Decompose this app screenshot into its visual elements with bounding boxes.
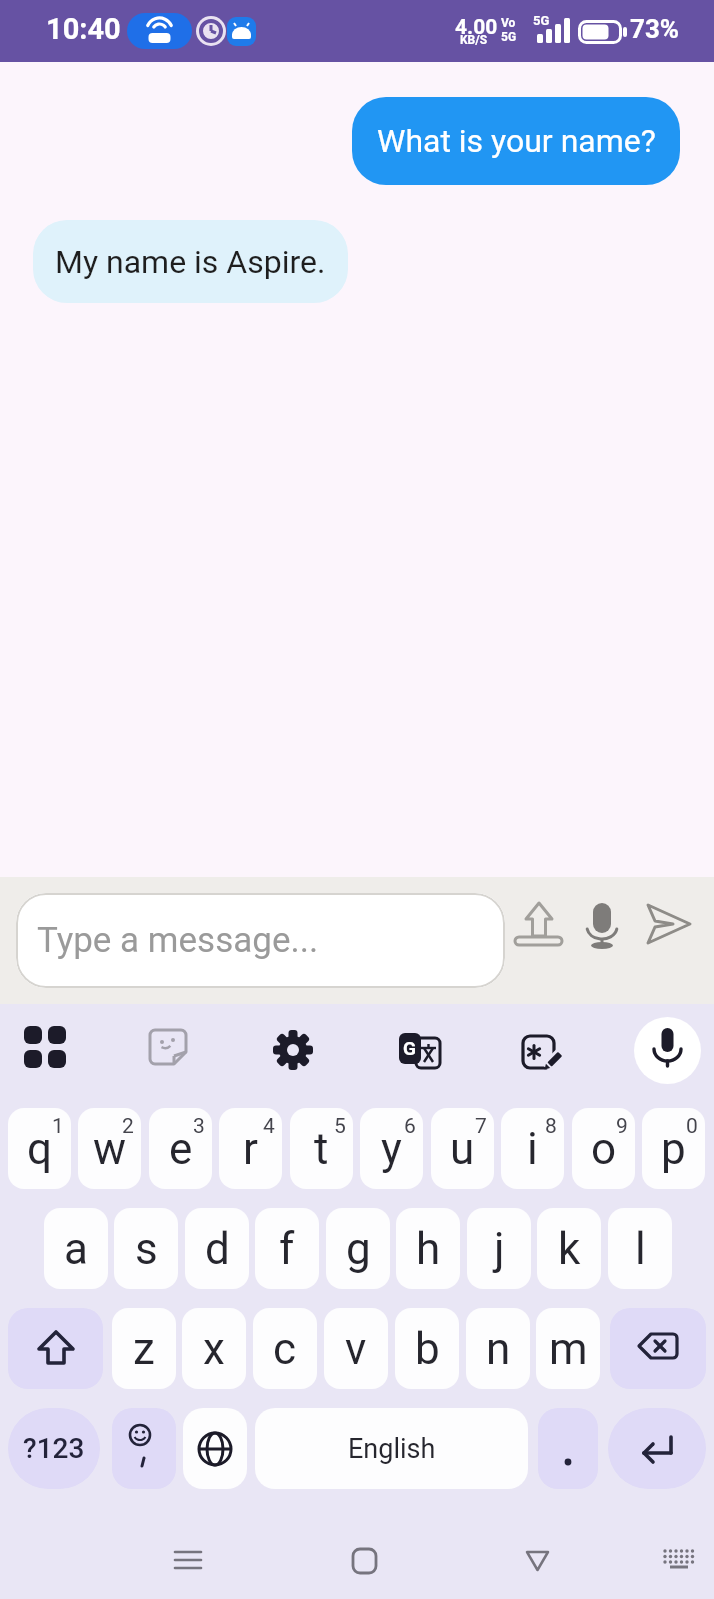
- button[interactable]: [642, 901, 694, 949]
- button[interactable]: x: [182, 1308, 246, 1389]
- button[interactable]: [148, 1028, 192, 1072]
- button[interactable]: o: [572, 1108, 635, 1189]
- button[interactable]: l: [608, 1208, 672, 1289]
- button[interactable]: d: [185, 1208, 249, 1289]
- button[interactable]: b: [395, 1308, 459, 1389]
- button[interactable]: [658, 1540, 700, 1582]
- staticText: q: [27, 1123, 53, 1175]
- button[interactable]: q: [8, 1108, 71, 1189]
- staticText: 4: [263, 1114, 275, 1139]
- button[interactable]: z: [112, 1308, 176, 1389]
- staticText: a: [64, 1223, 88, 1275]
- button[interactable]: [608, 1408, 706, 1489]
- button[interactable]: [127, 13, 192, 49]
- staticText: Type a message...: [37, 920, 319, 961]
- button[interactable]: [517, 1540, 557, 1580]
- staticText: b: [415, 1323, 440, 1375]
- button[interactable]: ?123: [8, 1408, 100, 1489]
- staticText: e: [169, 1123, 193, 1175]
- button[interactable]: a: [44, 1208, 108, 1289]
- button[interactable]: t: [290, 1108, 353, 1189]
- button[interactable]: r: [219, 1108, 282, 1189]
- staticText: o: [591, 1123, 617, 1175]
- button[interactable]: p: [642, 1108, 705, 1189]
- button[interactable]: j: [467, 1208, 531, 1289]
- staticText: l: [635, 1223, 646, 1275]
- staticText: n: [486, 1323, 511, 1375]
- button[interactable]: What is your name?: [352, 97, 680, 185]
- staticText: u: [450, 1123, 475, 1175]
- staticText: 0: [686, 1114, 698, 1139]
- button[interactable]: c: [253, 1308, 317, 1389]
- button[interactable]: [112, 1408, 176, 1489]
- button[interactable]: [634, 1017, 701, 1084]
- staticText: 2: [122, 1114, 134, 1139]
- staticText: t: [314, 1123, 329, 1175]
- staticText: Vo: [501, 16, 516, 30]
- button[interactable]: h: [396, 1208, 460, 1289]
- staticText: 4.00: [455, 15, 498, 40]
- staticText: English: [348, 1433, 436, 1465]
- staticText: f: [279, 1223, 295, 1275]
- button[interactable]: y: [360, 1108, 423, 1189]
- staticText: 73%: [630, 14, 680, 44]
- button[interactable]: [168, 1540, 208, 1580]
- button[interactable]: [8, 1308, 103, 1389]
- button[interactable]: w: [78, 1108, 141, 1189]
- staticText: 9: [616, 1114, 628, 1139]
- staticText: w: [93, 1123, 127, 1175]
- button[interactable]: [513, 899, 565, 949]
- button[interactable]: [610, 1308, 706, 1389]
- staticText: 8: [545, 1114, 557, 1139]
- staticText: 7: [475, 1114, 487, 1139]
- button[interactable]: My name is Aspire.: [33, 220, 348, 303]
- button[interactable]: v: [324, 1308, 388, 1389]
- staticText: My name is Aspire.: [55, 243, 326, 281]
- staticText: h: [416, 1223, 441, 1275]
- staticText: x: [203, 1323, 225, 1375]
- staticText: 10:40: [46, 12, 121, 46]
- staticText: 3: [193, 1114, 205, 1139]
- button[interactable]: f: [255, 1208, 319, 1289]
- button[interactable]: e: [149, 1108, 212, 1189]
- button[interactable]: English: [255, 1408, 528, 1489]
- button[interactable]: [183, 1408, 247, 1489]
- button[interactable]: s: [114, 1208, 178, 1289]
- staticText: k: [558, 1223, 581, 1275]
- staticText: g: [346, 1223, 371, 1275]
- button[interactable]: g: [326, 1208, 390, 1289]
- button[interactable]: [586, 901, 620, 949]
- button[interactable]: [520, 1030, 566, 1076]
- staticText: 5: [334, 1114, 346, 1139]
- button[interactable]: [538, 1408, 598, 1489]
- staticText: z: [133, 1323, 155, 1375]
- staticText: 5G: [501, 30, 517, 44]
- button[interactable]: i: [501, 1108, 564, 1189]
- staticText: d: [205, 1223, 230, 1275]
- staticText: j: [494, 1223, 505, 1275]
- staticText: 1: [52, 1114, 64, 1139]
- button[interactable]: [344, 1540, 384, 1580]
- button[interactable]: n: [466, 1308, 530, 1389]
- staticText: r: [243, 1123, 258, 1175]
- button[interactable]: m: [536, 1308, 600, 1389]
- staticText: m: [549, 1323, 588, 1375]
- staticText: G: [403, 1037, 416, 1059]
- button[interactable]: G: [397, 1028, 443, 1074]
- staticText: c: [273, 1323, 297, 1375]
- button[interactable]: k: [537, 1208, 601, 1289]
- button[interactable]: Type a message...: [16, 893, 505, 988]
- staticText: ?123: [23, 1432, 85, 1465]
- staticText: 6: [404, 1114, 416, 1139]
- staticText: p: [661, 1123, 686, 1175]
- button[interactable]: u: [431, 1108, 494, 1189]
- staticText: What is your name?: [377, 122, 656, 160]
- staticText: y: [381, 1123, 402, 1175]
- staticText: v: [345, 1323, 367, 1375]
- staticText: i: [527, 1123, 538, 1175]
- staticText: 5G: [533, 13, 550, 28]
- staticText: KB/S: [460, 33, 488, 47]
- staticText: s: [135, 1223, 158, 1275]
- button[interactable]: [24, 1026, 66, 1068]
- button[interactable]: [271, 1028, 315, 1072]
